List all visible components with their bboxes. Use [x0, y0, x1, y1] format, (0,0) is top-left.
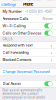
staticText: › [50, 57, 52, 62]
button[interactable]: My Number [0, 8, 56, 15]
staticText: Phone [23, 2, 33, 7]
staticText: My Number [3, 9, 22, 13]
staticText: Dial assist automatically determines the… [3, 88, 46, 100]
staticText: •••∘∘ Carrier [1, 0, 22, 1]
staticText: Settings [3, 2, 16, 7]
staticText: › [50, 42, 52, 48]
staticText: Never [42, 16, 52, 21]
staticText: Dial Assist [3, 82, 21, 86]
staticText: Call Forwarding [3, 50, 29, 55]
staticText: Blocked Contacts [3, 58, 32, 62]
staticText: +1 (555) 123-4567 [24, 9, 52, 13]
staticText: CALLS [3, 37, 13, 41]
staticText: Announce Calls [3, 16, 29, 21]
staticText: › [50, 50, 52, 55]
button[interactable]: ‹ [0, 1, 17, 8]
button[interactable]: Dial Assist [0, 80, 56, 87]
button[interactable]: Respond with Text [0, 42, 56, 49]
button[interactable]: Change Voicemail Password [0, 68, 56, 75]
button[interactable]: Wi-Fi Calling [0, 22, 56, 29]
staticText: Wi-Fi Calling [3, 24, 26, 28]
staticText: ‹ [1, 1, 3, 7]
staticText: Respond with Text [3, 43, 33, 47]
staticText: Calls on Other Devices [3, 31, 42, 35]
button[interactable]: Announce Calls [0, 15, 56, 22]
button[interactable]: Blocked Contacts [0, 56, 56, 63]
button[interactable]: Calls on Other Devices [0, 30, 56, 37]
staticText: 9:41 AM [28, 0, 40, 1]
staticText: 100% [47, 0, 55, 1]
button[interactable]: Call Forwarding [0, 49, 56, 56]
staticText: Change Voicemail Password [3, 70, 50, 74]
